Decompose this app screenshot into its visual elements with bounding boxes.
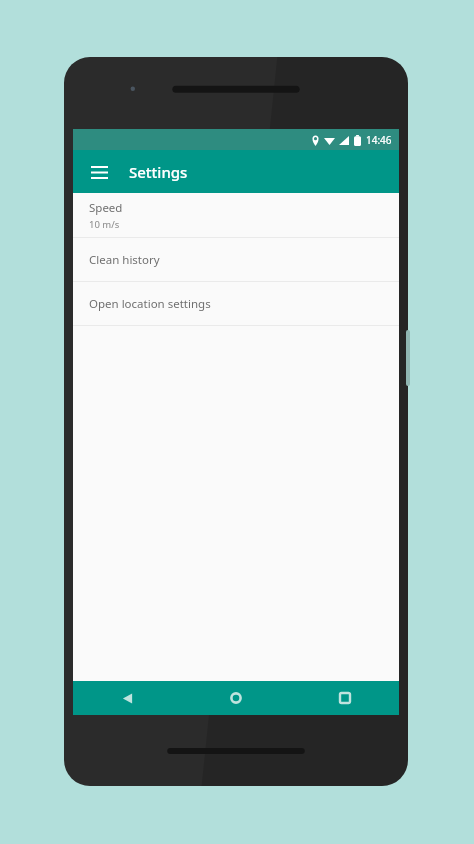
staticText: Open location settings (89, 296, 211, 312)
button[interactable]: Back (73, 681, 181, 715)
button[interactable]: Clean history (73, 238, 399, 281)
button[interactable]: Speed (73, 193, 399, 237)
staticText: 14:46 (366, 133, 392, 147)
button[interactable]: Home (181, 681, 290, 715)
staticText: Speed (89, 200, 123, 216)
staticText: 10 m/s (89, 218, 120, 231)
staticText: Settings (129, 162, 188, 182)
button[interactable]: Open navigation drawer (83, 156, 115, 188)
staticText: Clean history (89, 252, 160, 268)
button[interactable]: Recent apps (290, 681, 399, 715)
button[interactable]: Open location settings (73, 282, 399, 325)
